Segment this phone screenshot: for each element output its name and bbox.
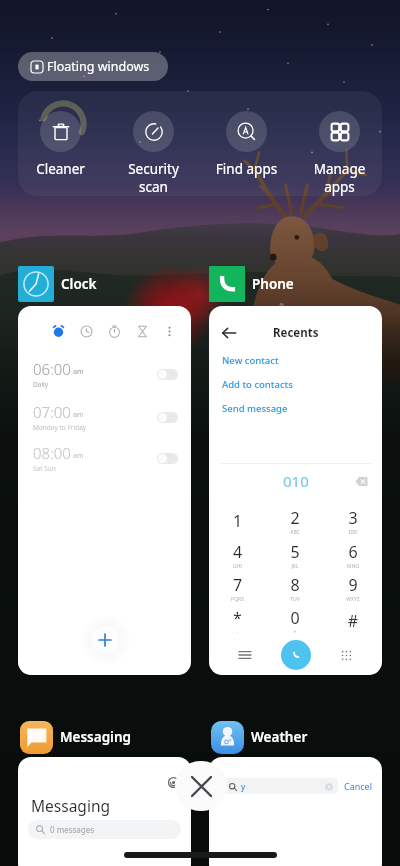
staticText: 08:00 [33, 443, 71, 463]
button[interactable]: Floating windows [18, 52, 168, 81]
button[interactable]: Cleaner [18, 111, 103, 178]
staticText: am [73, 367, 84, 377]
button[interactable]: Add to contacts [209, 374, 382, 394]
button[interactable]: 7 [209, 573, 266, 603]
button[interactable]: Phone [209, 266, 294, 302]
button[interactable]: # [324, 606, 382, 636]
button[interactable]: 4 [209, 540, 266, 570]
staticText: 07:00 [33, 402, 71, 422]
button[interactable]: Manage [297, 111, 382, 196]
staticText: # [324, 610, 382, 632]
staticText: ABC [266, 529, 324, 536]
staticText: MNO [324, 563, 382, 570]
staticText: 7 [209, 574, 266, 596]
staticText: Floating windows [47, 58, 150, 75]
staticText: Messaging [31, 795, 110, 816]
staticText: scan [111, 178, 196, 196]
staticText: Send message [222, 402, 288, 415]
staticText: Recents [273, 325, 319, 341]
staticText: * [209, 607, 266, 629]
button[interactable]: Keypad [332, 641, 360, 669]
staticText: apps [297, 178, 382, 196]
staticText: Security [111, 160, 196, 178]
staticText: Add to contacts [222, 378, 293, 391]
button[interactable]: Call log [231, 641, 259, 669]
staticText: 3 [324, 507, 382, 529]
staticText: 4 [209, 541, 266, 563]
button[interactable] [209, 306, 382, 675]
staticText: 06:00 [33, 359, 71, 379]
staticText: Weather [251, 728, 308, 746]
button[interactable]: * [209, 606, 266, 636]
staticText: Cleaner [18, 160, 103, 178]
staticText: GHI [209, 563, 266, 570]
staticText: DEF [324, 529, 382, 536]
button[interactable]: 2 [266, 506, 324, 536]
staticText: 0 [266, 607, 324, 629]
staticText: JKL [266, 563, 324, 570]
staticText: Find apps [204, 160, 289, 178]
staticText: + [266, 629, 324, 636]
staticText: PQRS [209, 596, 266, 603]
button[interactable]: 3 [324, 506, 382, 536]
staticText: Daily [33, 380, 49, 389]
staticText: 6 [324, 541, 382, 563]
button[interactable]: New contact [209, 350, 382, 370]
staticText: Messaging [60, 728, 131, 746]
staticText: Monday to Friday [33, 423, 87, 432]
staticText: am [73, 451, 84, 461]
button[interactable]: Messaging [20, 719, 131, 755]
button[interactable]: 07:00 [18, 402, 191, 432]
button[interactable] [18, 757, 191, 866]
button[interactable]: Weather [211, 719, 308, 755]
button[interactable]: 08:00 [18, 443, 191, 473]
staticText: WXYZ [324, 596, 382, 603]
staticText: 1 [209, 510, 266, 532]
button[interactable]: Clock [18, 266, 97, 302]
button[interactable]: у [224, 778, 338, 794]
button[interactable]: 1 [209, 506, 266, 536]
button[interactable]: 8 [266, 573, 324, 603]
staticText: New contact [222, 354, 279, 367]
button[interactable]: 0 [266, 606, 324, 636]
button[interactable]: Send message [209, 398, 382, 418]
staticText: Clock [61, 275, 97, 293]
button[interactable]: 9 [324, 573, 382, 603]
staticText: 5 [266, 541, 324, 563]
button[interactable]: 5 [266, 540, 324, 570]
staticText: Sat Sun [33, 464, 56, 473]
button[interactable]: 06:00 [18, 359, 191, 389]
button[interactable]: Back [218, 324, 240, 342]
button[interactable] [209, 757, 382, 866]
staticText: TUV [266, 596, 324, 603]
button[interactable]: Find apps [204, 111, 289, 178]
staticText: Manage [297, 160, 382, 178]
staticText: у [241, 781, 246, 792]
staticText: 9 [324, 574, 382, 596]
button[interactable]: 6 [324, 540, 382, 570]
button[interactable] [18, 306, 191, 675]
button[interactable]: Cancel [344, 780, 373, 792]
button[interactable]: Call [281, 640, 311, 670]
button[interactable]: Add alarm [91, 626, 119, 654]
staticText: 8 [266, 574, 324, 596]
staticText: 0 messages [50, 824, 95, 835]
staticText: 010 [283, 471, 309, 491]
button[interactable]: Close all [175, 761, 227, 811]
button[interactable]: Security [111, 111, 196, 196]
staticText: 2 [266, 507, 324, 529]
staticText: am [73, 410, 84, 420]
staticText: Phone [252, 275, 294, 293]
